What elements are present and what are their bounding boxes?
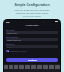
staticText: Full name bbox=[6, 29, 15, 31]
staticText: Remember this device bbox=[10, 50, 27, 52]
staticText: Jordan Avery bbox=[7, 32, 18, 34]
staticText: Account setup bbox=[6, 24, 58, 27]
staticText: With just a few taps you can quickly con… bbox=[14, 9, 50, 18]
staticText: ........ bbox=[7, 46, 11, 48]
staticText: jordan@mail.com bbox=[7, 39, 21, 41]
staticText: Continue bbox=[28, 59, 37, 62]
staticText: Simple Configuration bbox=[14, 2, 50, 7]
staticText: 9:41 bbox=[6, 21, 10, 23]
staticText: Email address bbox=[6, 36, 18, 38]
staticText: Password bbox=[6, 43, 15, 45]
button[interactable]: jordan@mail.com bbox=[6, 38, 58, 41]
button[interactable]: Jordan Avery bbox=[6, 31, 58, 34]
button[interactable]: Continue bbox=[6, 58, 58, 62]
button[interactable]: Remember me toggle bbox=[6, 50, 9, 52]
